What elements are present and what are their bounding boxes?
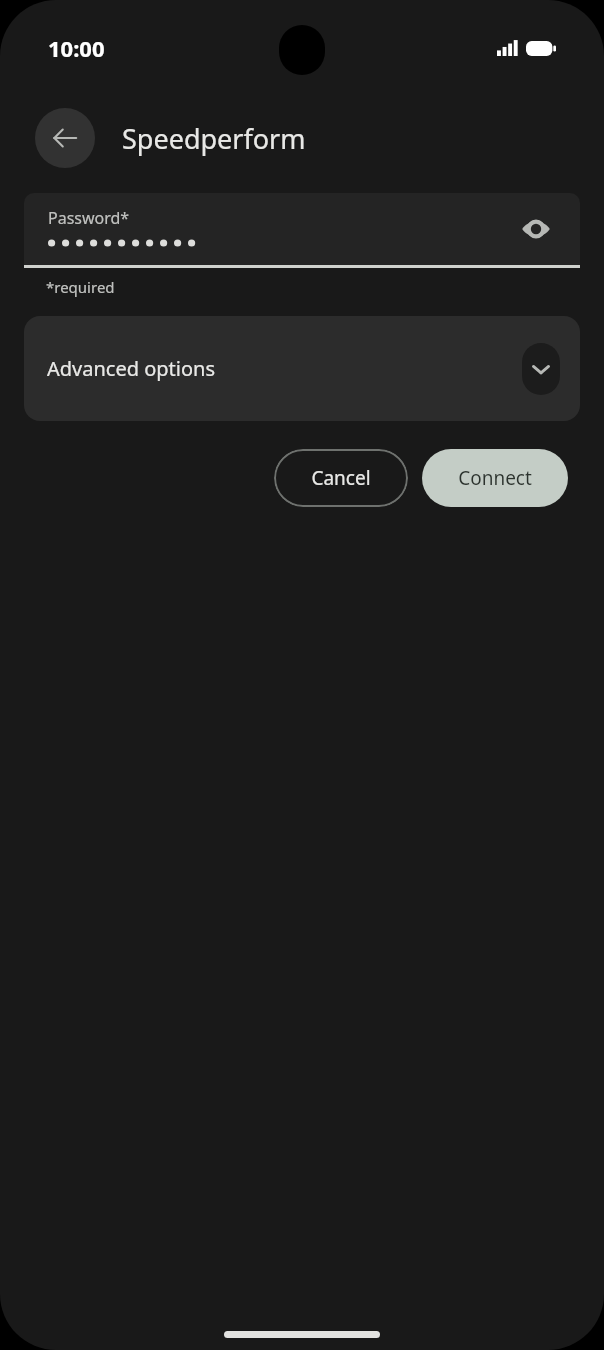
button[interactable]: Back	[35, 108, 95, 168]
staticText: Password*	[48, 207, 130, 229]
button[interactable]: Password*	[24, 193, 580, 268]
button[interactable]: Connect	[422, 449, 568, 507]
staticText: Speedperform	[122, 120, 306, 157]
staticText: Advanced options	[47, 355, 216, 382]
button[interactable]: Cancel	[274, 449, 408, 507]
staticText: Connect	[458, 465, 532, 491]
staticText: 10:00	[48, 33, 105, 63]
staticText: Cancel	[311, 465, 371, 491]
button[interactable]: Show password	[512, 205, 560, 253]
staticText: *required	[46, 277, 115, 297]
button[interactable]: Advanced options	[24, 316, 580, 421]
